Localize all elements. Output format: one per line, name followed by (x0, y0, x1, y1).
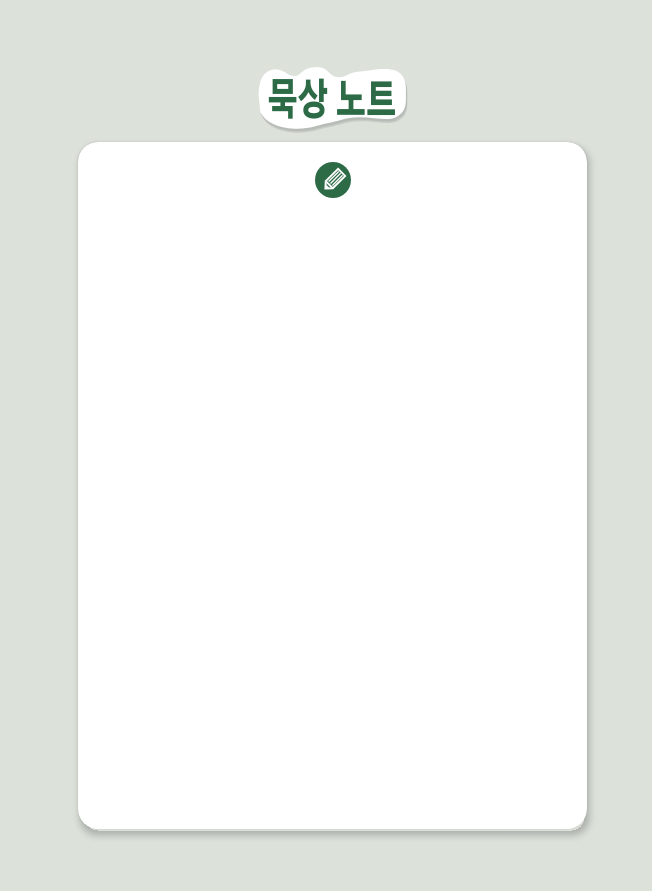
staticText: 묵상 노트 (240, 81, 424, 123)
button[interactable]: Write a new note (315, 162, 351, 198)
